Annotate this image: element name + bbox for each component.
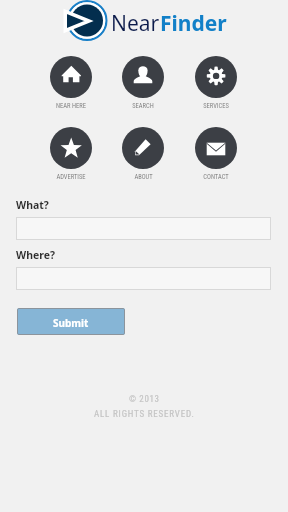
staticText: © 2013: [129, 394, 160, 405]
staticText: Finder: [160, 9, 227, 38]
staticText: SEARCH: [132, 102, 154, 110]
other: ADVERTISE: [50, 127, 92, 169]
button[interactable]: ADVERTISE: [35, 127, 107, 181]
staticText: ABOUT: [134, 173, 153, 181]
button[interactable]: SEARCH: [107, 56, 179, 110]
button[interactable]: SERVICES: [180, 56, 252, 110]
button[interactable]: ABOUT: [107, 127, 179, 181]
staticText: What?: [16, 198, 49, 212]
other: SEARCH: [122, 56, 164, 98]
other: CONTACT: [195, 127, 237, 169]
button[interactable]: NEAR HERE: [35, 56, 107, 110]
button[interactable]: [16, 267, 271, 290]
staticText: ALL RIGHTS RESERVED.: [94, 409, 195, 420]
staticText: Where?: [16, 248, 56, 262]
button[interactable]: [16, 217, 271, 240]
other: SERVICES: [195, 56, 237, 98]
button[interactable]: CONTACT: [180, 127, 252, 181]
staticText: Near: [111, 9, 160, 38]
other: NEAR HERE: [50, 56, 92, 98]
staticText: ADVERTISE: [56, 173, 86, 181]
staticText: SERVICES: [203, 102, 229, 110]
staticText: NEAR HERE: [56, 102, 86, 110]
staticText: Submit: [53, 316, 89, 330]
staticText: CONTACT: [203, 173, 229, 181]
button[interactable]: Submit: [17, 308, 125, 335]
other: ABOUT: [122, 127, 164, 169]
